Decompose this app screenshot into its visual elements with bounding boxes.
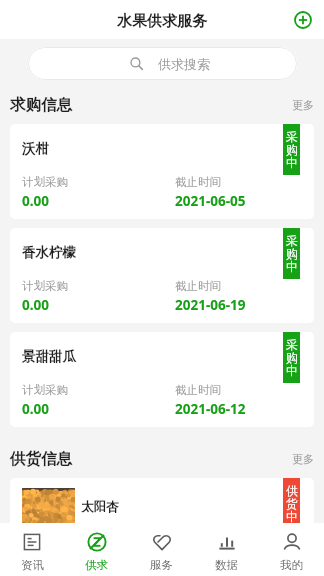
staticText: 供货信息	[10, 449, 72, 469]
staticText: 计划采购	[22, 175, 68, 189]
button[interactable]: 数据	[194, 523, 259, 576]
staticText: 0.00	[22, 192, 49, 210]
button[interactable]: 供求	[64, 523, 129, 576]
staticText: 0.00	[22, 296, 49, 314]
staticText: 水果供求服务	[117, 12, 207, 31]
staticText: 求购信息	[10, 95, 72, 115]
staticText: 采 购 中	[286, 337, 298, 378]
staticText: 截止时间	[175, 279, 221, 293]
button[interactable]: 我的	[259, 523, 324, 576]
button[interactable]: 太阳杏	[10, 478, 314, 573]
staticText: 2021-06-19	[175, 296, 246, 314]
button[interactable]: 更多	[292, 96, 314, 110]
staticText: 更多	[292, 98, 314, 112]
staticText: 截止时间	[175, 383, 221, 397]
staticText: 截止时间	[175, 175, 221, 189]
button[interactable]: 更多	[292, 450, 314, 464]
staticText: 计划采购	[22, 279, 68, 293]
staticText: 2021-06-12	[175, 400, 246, 418]
staticText: 更多	[292, 452, 314, 466]
staticText: 我的	[280, 558, 303, 572]
staticText: 景甜甜瓜	[22, 348, 76, 365]
staticText: 太阳杏	[81, 499, 119, 515]
staticText: 计划采购	[22, 383, 68, 397]
staticText: 采 购 中	[286, 233, 298, 274]
staticText: 服务	[150, 558, 173, 572]
button[interactable]: 香水柠檬	[10, 228, 314, 323]
button[interactable]: 沃柑	[10, 124, 314, 219]
staticText: 香水柠檬	[22, 244, 76, 261]
staticText: 沃柑	[22, 140, 49, 157]
button[interactable]: 景甜甜瓜	[10, 332, 314, 427]
staticText: 供求搜索	[158, 56, 210, 72]
staticText: 2021-06-05	[175, 192, 246, 210]
button[interactable]: 供求搜索	[28, 47, 297, 80]
staticText: 资讯	[21, 558, 44, 572]
button[interactable]: 服务	[129, 523, 194, 576]
staticText: 0.00	[22, 400, 49, 418]
button[interactable]: Add	[290, 7, 316, 33]
staticText: 供 货 中	[286, 483, 298, 524]
staticText: 供求	[85, 558, 108, 572]
button[interactable]: 资讯	[0, 523, 64, 576]
staticText: 数据	[215, 558, 238, 572]
staticText: 采 购 中	[286, 129, 298, 170]
